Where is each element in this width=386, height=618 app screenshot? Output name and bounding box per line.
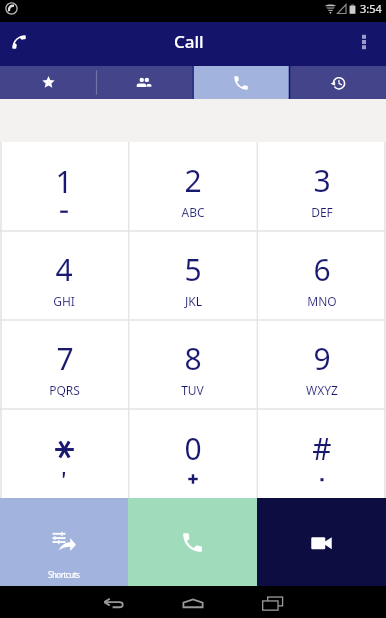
button[interactable]: Video call: [257, 498, 386, 586]
button[interactable]: Recents: [246, 586, 300, 618]
staticText: 0: [184, 428, 202, 469]
button[interactable]: Dialpad: [192, 66, 289, 99]
staticText: DEF: [311, 204, 333, 220]
button[interactable]: 3: [257, 142, 386, 231]
button[interactable]: More options: [342, 22, 386, 66]
button[interactable]: History: [289, 66, 386, 99]
button[interactable]: 0: [128, 409, 257, 498]
staticText: 6: [313, 249, 331, 290]
button[interactable]: Dial: [0, 22, 38, 66]
button[interactable]: [0, 409, 128, 498]
button[interactable]: 6: [257, 231, 386, 320]
staticText: JKL: [185, 293, 202, 309]
button[interactable]: Favourites: [0, 66, 96, 99]
staticText: 5: [184, 249, 202, 290]
staticText: 8: [184, 338, 202, 379]
staticText: #: [312, 428, 332, 469]
button[interactable]: 9: [257, 320, 386, 409]
button[interactable]: 7: [0, 320, 128, 409]
staticText: 4: [55, 249, 73, 290]
button[interactable]: #: [257, 409, 386, 498]
button[interactable]: Shortcuts: [0, 498, 128, 586]
staticText: 3:54: [360, 1, 382, 16]
button[interactable]: Back: [86, 586, 140, 618]
staticText: 1: [55, 161, 73, 202]
staticText: 9: [313, 338, 331, 379]
staticText: 3: [313, 160, 331, 201]
staticText: 7: [56, 338, 74, 379]
staticText: ABC: [181, 204, 205, 220]
button[interactable]: Contacts: [96, 66, 192, 99]
staticText: PQRS: [49, 382, 80, 398]
staticText: 2: [184, 160, 202, 201]
button[interactable]: 2: [128, 142, 257, 231]
button[interactable]: Home: [166, 586, 220, 618]
button[interactable]: 5: [128, 231, 257, 320]
button[interactable]: 4: [0, 231, 128, 320]
staticText: WXYZ: [306, 382, 338, 398]
button[interactable]: Call: [128, 498, 257, 586]
staticText: Call: [174, 30, 204, 53]
staticText: Shortcuts: [48, 569, 80, 580]
button[interactable]: 8: [128, 320, 257, 409]
button[interactable]: 1: [0, 142, 128, 231]
staticText: MNO: [307, 293, 337, 309]
staticText: TUV: [181, 382, 204, 398]
staticText: GHI: [53, 293, 75, 309]
